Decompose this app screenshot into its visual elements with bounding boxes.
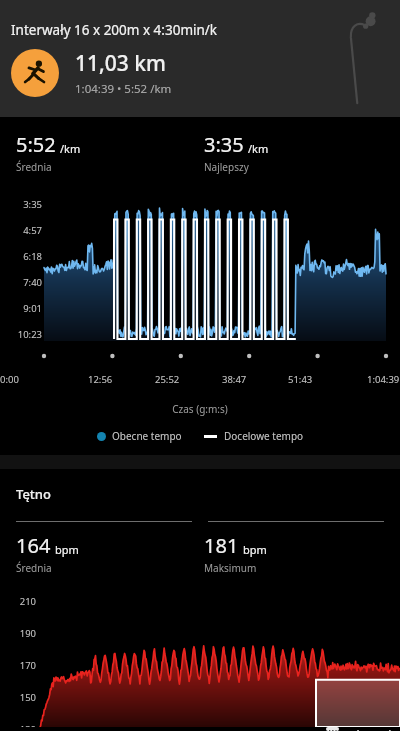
button[interactable]: Docelowe tempo <box>204 429 304 443</box>
staticText: /km <box>248 141 269 156</box>
staticText: 6:18 <box>4 250 42 263</box>
staticText: 3:35 <box>4 198 42 211</box>
staticText: Docelowe tempo <box>224 429 304 443</box>
staticText: 130 <box>4 723 36 727</box>
staticText: 7:40 <box>4 276 42 289</box>
staticText: 190 <box>4 627 36 640</box>
staticText: Interwały 16 x 200m x 4:30min/k <box>11 21 218 39</box>
staticText: 170 <box>4 659 36 672</box>
button[interactable]: 3:35 <box>204 131 400 174</box>
staticText: 12:56 <box>88 373 113 386</box>
staticText: Średnia <box>16 160 52 174</box>
staticText: Czas (g:m:s) <box>0 402 400 416</box>
staticText: Maksimum <box>204 561 257 575</box>
staticText: 1:04:39 • 5:52 /km <box>75 81 172 97</box>
staticText: 1:04:39 <box>367 373 400 386</box>
staticText: Średnia <box>16 561 52 575</box>
staticText: 9:01 <box>4 302 42 315</box>
staticText: 5:52 <box>16 131 56 158</box>
button[interactable]: 164 <box>16 532 200 575</box>
button[interactable]: Running activity <box>11 49 59 97</box>
staticText: 150 <box>4 691 36 704</box>
staticText: 4:57 <box>4 224 42 237</box>
staticText: 3:35 <box>204 131 244 158</box>
staticText: 38:47 <box>222 373 247 386</box>
button[interactable]: 5:52 <box>16 131 200 174</box>
staticText: wykop.pl <box>341 727 392 731</box>
button[interactable]: Tętno <box>16 485 51 503</box>
button[interactable]: Obecne tempo <box>97 429 182 443</box>
staticText: 11,03 km <box>75 49 166 78</box>
staticText: Obecne tempo <box>112 429 182 443</box>
button[interactable]: 181 <box>204 532 400 575</box>
staticText: /km <box>60 141 81 156</box>
button[interactable]: Interwały 16 x 200m x 4:30min/k <box>0 0 400 117</box>
staticText: bpm <box>243 542 267 557</box>
staticText: 25:52 <box>155 373 180 386</box>
staticText: 51:43 <box>288 373 313 386</box>
staticText: bpm <box>55 542 79 557</box>
staticText: 210 <box>4 595 36 608</box>
staticText: 164 <box>16 532 51 559</box>
staticText: W <box>329 727 337 731</box>
staticText: Najlepszy <box>204 160 249 174</box>
staticText: 10:23 <box>4 328 42 341</box>
staticText: 181 <box>204 532 239 559</box>
staticText: 0:00 <box>0 373 19 386</box>
